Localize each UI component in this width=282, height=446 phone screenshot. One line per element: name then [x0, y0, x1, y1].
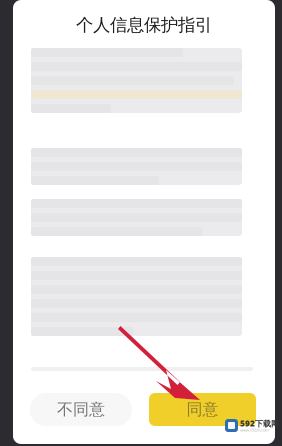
button[interactable]: 不同意	[30, 393, 132, 426]
staticText: 不同意	[57, 400, 105, 419]
button[interactable]: 同意	[149, 393, 256, 426]
staticText: www.592zh.com	[240, 427, 269, 433]
staticText: 个人信息保护指引	[76, 14, 212, 36]
staticText: 同意	[186, 400, 218, 419]
staticText: 592下载网	[240, 418, 279, 429]
